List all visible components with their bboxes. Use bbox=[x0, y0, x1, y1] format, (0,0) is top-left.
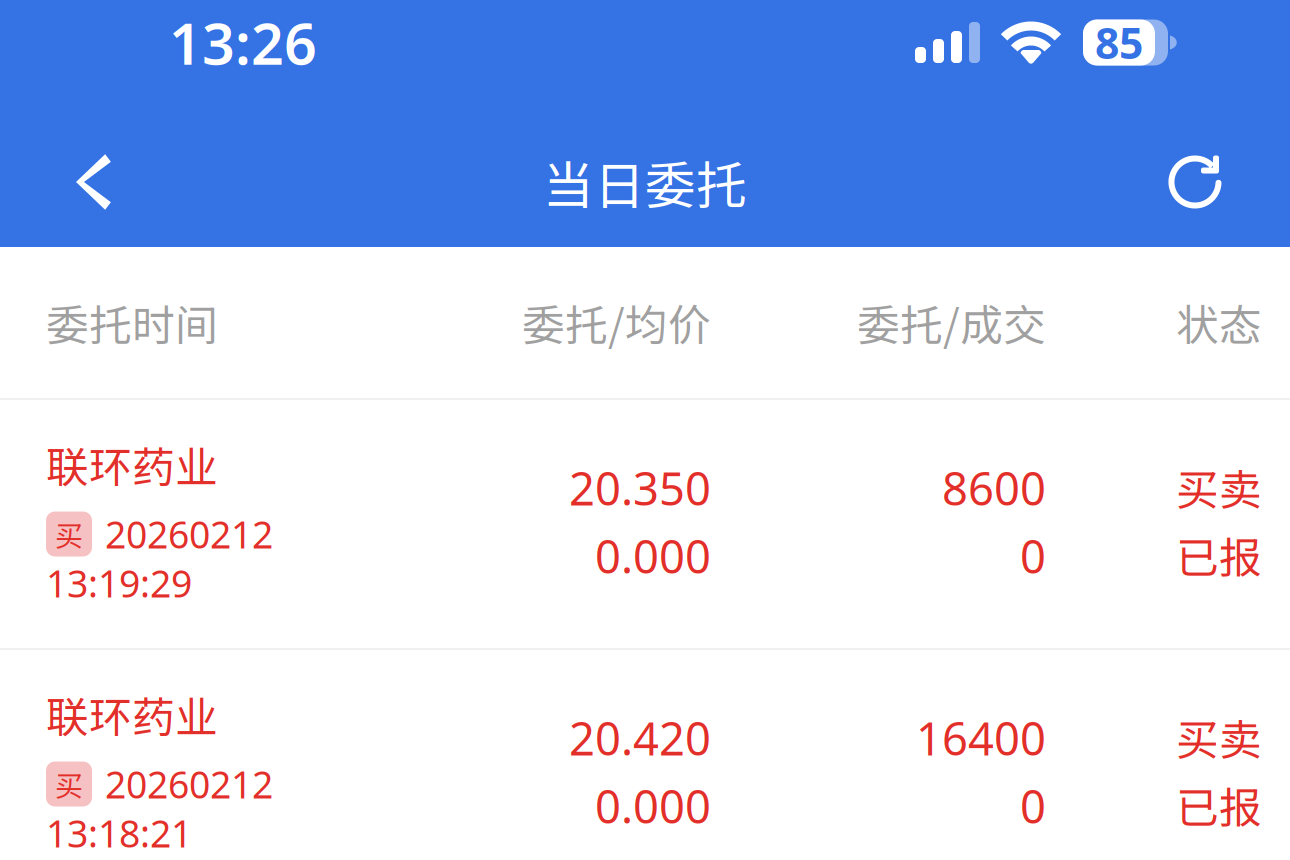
staticText: 13:19:29 bbox=[46, 558, 192, 608]
button[interactable]: Refresh bbox=[1140, 127, 1250, 237]
staticText: 委托时间 bbox=[46, 292, 218, 353]
staticText: 0 bbox=[1020, 776, 1046, 836]
staticText: 委托/均价 bbox=[522, 292, 711, 353]
staticText: 已报 bbox=[1176, 774, 1262, 836]
staticText: 20260212 bbox=[105, 509, 273, 559]
staticText: 买 bbox=[55, 764, 83, 804]
staticText: 联环药业 bbox=[46, 434, 218, 495]
staticText: 联环药业 bbox=[46, 684, 218, 745]
staticText: 买 bbox=[55, 514, 83, 554]
staticText: 13:18:21 bbox=[46, 808, 192, 858]
staticText: 8600 bbox=[942, 458, 1046, 518]
staticText: 16400 bbox=[916, 708, 1046, 768]
staticText: 85 bbox=[1095, 14, 1143, 71]
staticText: 当日委托 bbox=[543, 145, 747, 219]
staticText: 已报 bbox=[1176, 524, 1262, 586]
staticText: 20.420 bbox=[569, 708, 711, 768]
button[interactable]: Back bbox=[37, 127, 147, 237]
staticText: 0 bbox=[1020, 526, 1046, 586]
staticText: 13:26 bbox=[169, 4, 317, 80]
staticText: 状态 bbox=[1176, 292, 1262, 353]
staticText: 委托/成交 bbox=[857, 292, 1046, 353]
staticText: 20260212 bbox=[105, 759, 273, 809]
staticText: 买卖 bbox=[1176, 456, 1262, 518]
staticText: 20.350 bbox=[569, 458, 711, 518]
staticText: 0.000 bbox=[595, 776, 711, 836]
button[interactable]: 联环药业 bbox=[0, 650, 1290, 860]
staticText: 买卖 bbox=[1176, 706, 1262, 768]
staticText: 0.000 bbox=[595, 526, 711, 586]
button[interactable]: 联环药业 bbox=[0, 400, 1290, 648]
